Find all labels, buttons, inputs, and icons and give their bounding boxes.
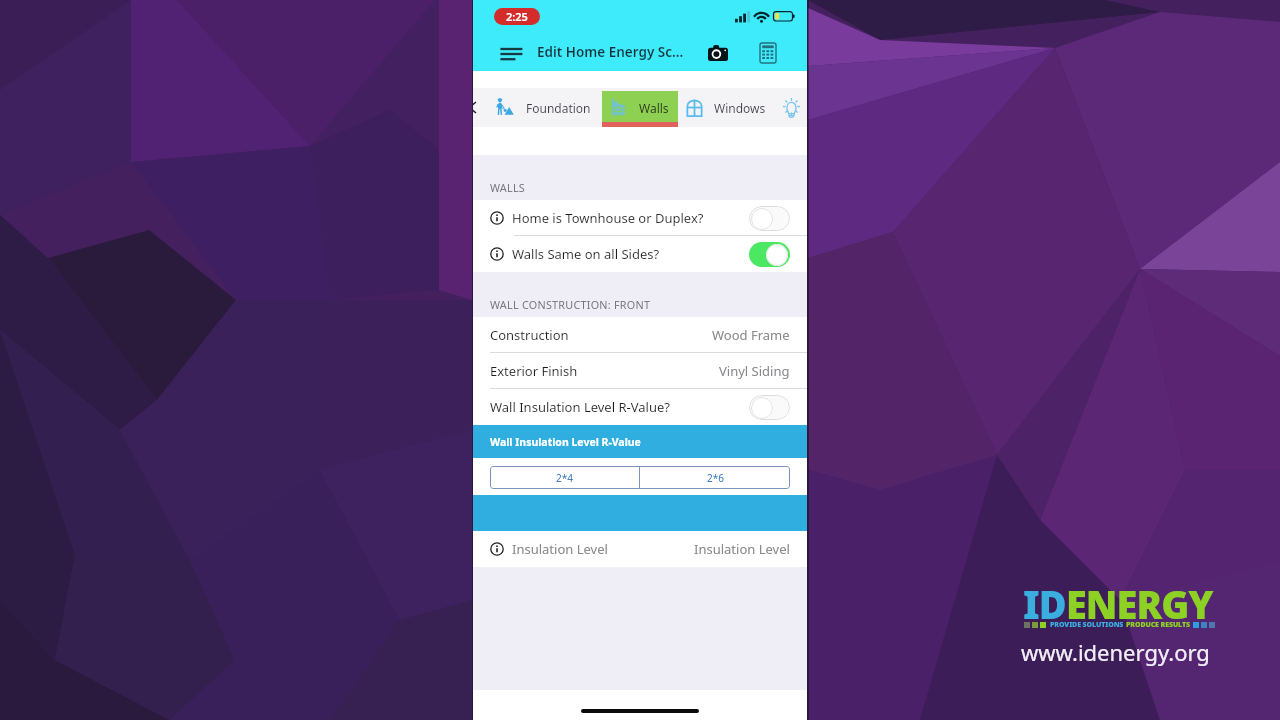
button[interactable]: Menu (493, 35, 527, 67)
staticText: Edit Home Energy Sc... (537, 43, 684, 61)
staticText: PROVIDE SOLUTIONS (1050, 620, 1124, 630)
button[interactable]: Previous tabs (473, 102, 476, 113)
button[interactable]: Insulation Level (473, 531, 807, 567)
button[interactable]: Calculator (757, 39, 777, 62)
staticText: ID (1023, 578, 1066, 630)
staticText: Wall Insulation Level R-Value (490, 435, 641, 449)
staticText: WALLS (490, 180, 526, 195)
staticText: 2:25 (506, 9, 528, 24)
button[interactable]: Camera (703, 42, 727, 63)
button[interactable]: Exterior Finish (473, 353, 807, 389)
button[interactable]: 2*4 (490, 466, 639, 489)
staticText: Wood Frame (712, 326, 790, 344)
button[interactable]: 2*6 (640, 466, 790, 489)
button[interactable]: Windows (681, 88, 773, 127)
button[interactable]: Foundation (489, 88, 597, 127)
staticText: Walls (639, 100, 669, 116)
staticText: www.idenergy.org (1021, 637, 1210, 667)
staticText: Construction (490, 326, 569, 344)
button[interactable]: Home is Townhouse or Duplex? (473, 200, 807, 236)
staticText: Foundation (526, 100, 591, 116)
button[interactable]: Walls Same on all Sides? (473, 236, 807, 272)
staticText: Insulation Level (512, 540, 608, 558)
button[interactable]: Wall Insulation Level R-Value? (473, 389, 807, 425)
button[interactable]: Lighting (782, 99, 801, 117)
button[interactable]: Walls (602, 88, 678, 127)
staticText: 2*4 (556, 471, 573, 485)
staticText: Wall Insulation Level R-Value? (490, 398, 670, 416)
staticText: ENERGY (1066, 578, 1213, 630)
staticText: Insulation Level (694, 540, 790, 558)
staticText: 2*6 (707, 471, 724, 485)
button[interactable]: Construction (473, 317, 807, 353)
staticText: PRODUCE RESULTS (1126, 620, 1190, 630)
staticText: Walls Same on all Sides? (512, 245, 660, 263)
button[interactable]: Switch on (749, 242, 790, 267)
button[interactable]: Switch off (749, 395, 790, 420)
staticText: Vinyl Siding (719, 362, 790, 380)
staticText: Exterior Finish (490, 362, 578, 380)
staticText: Home is Townhouse or Duplex? (512, 209, 704, 227)
staticText: WALL CONSTRUCTION: FRONT (490, 297, 651, 312)
button[interactable]: Switch off (749, 206, 790, 231)
staticText: Windows (714, 100, 766, 116)
